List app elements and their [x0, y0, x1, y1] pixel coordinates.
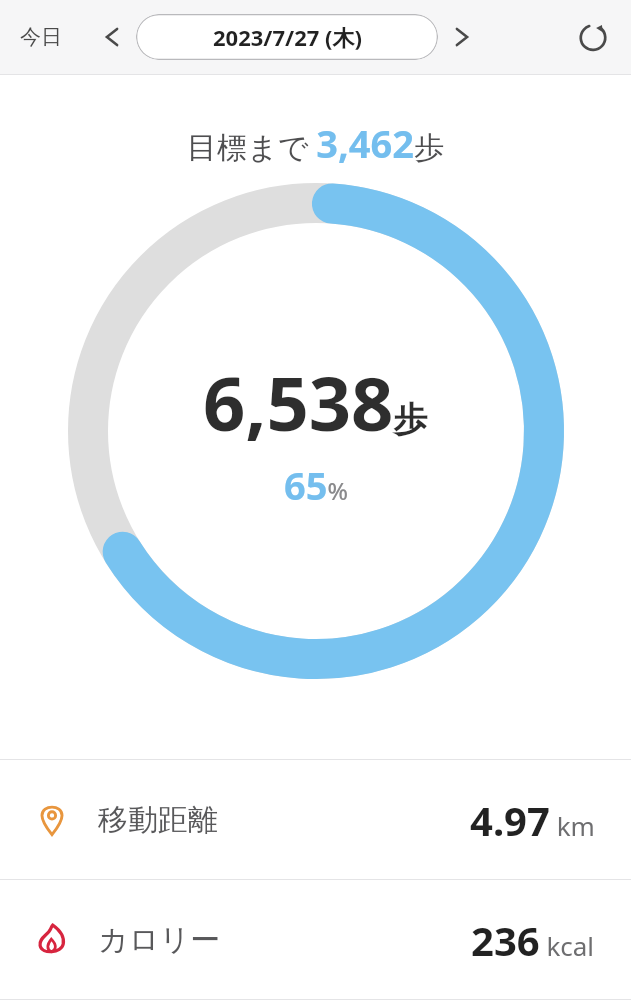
- button[interactable]: Refresh: [569, 13, 617, 61]
- staticText: カロリー: [98, 921, 221, 959]
- staticText: 目標まで 3,462歩: [187, 117, 444, 169]
- staticText: 4.97 km: [470, 793, 595, 847]
- staticText: 2023/7/27 (木): [213, 22, 362, 52]
- staticText: 65%: [284, 459, 348, 511]
- button[interactable]: 今日: [0, 14, 82, 60]
- staticText: 6,538歩: [203, 352, 428, 453]
- other: Distance: [32, 800, 72, 840]
- button[interactable]: Distance: [0, 760, 631, 879]
- other: Calories: [32, 920, 72, 960]
- button[interactable]: 2023/7/27 (木): [136, 14, 438, 60]
- button[interactable]: Next day: [444, 19, 480, 55]
- staticText: 移動距離: [98, 801, 218, 839]
- staticText: 236 kcal: [471, 913, 595, 967]
- staticText: 今日: [20, 24, 62, 50]
- button[interactable]: Calories: [0, 880, 631, 999]
- button[interactable]: Previous day: [94, 19, 130, 55]
